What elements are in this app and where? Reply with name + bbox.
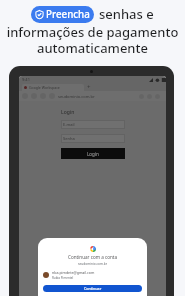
staticText: Login: [87, 151, 99, 157]
staticText: senhas e: [99, 5, 154, 23]
staticText: Login: [61, 109, 75, 116]
button[interactable]: Preencha: [31, 6, 94, 23]
staticText: E-mail: [63, 122, 75, 127]
button[interactable]: Continuar: [43, 285, 142, 292]
staticText: 9:41: [22, 77, 30, 82]
staticText: Continuar: [84, 286, 102, 291]
staticText: informações de pagamento automaticamente: [0, 23, 185, 56]
button[interactable]: Google Workspace: [22, 84, 84, 91]
staticText: Preencha: [46, 8, 90, 21]
staticText: +: [87, 83, 91, 91]
staticText: seudominio.com.br: [78, 262, 108, 266]
button[interactable]: Login: [61, 148, 125, 159]
staticText: Google Workspace: [29, 85, 60, 90]
button[interactable]: nba.pimdete@gmail.com: [43, 268, 142, 281]
staticText: seudominio.com.br: [58, 94, 95, 99]
staticText: Continuar com a conta: [68, 254, 118, 260]
staticText: Rubia Pimentel: [52, 276, 74, 280]
staticText: Senha: [63, 136, 75, 141]
staticText: nba.pimdete@gmail.com: [52, 270, 95, 275]
